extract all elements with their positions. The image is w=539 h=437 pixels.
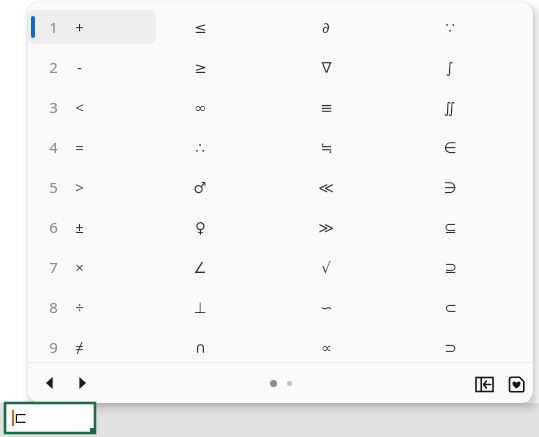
button[interactable]: ≪ [311,175,341,199]
button[interactable]: 5 [42,175,64,199]
staticText: ≡ [320,99,333,116]
button[interactable]: 8 [42,295,64,319]
staticText: 4 [49,137,58,157]
button[interactable]: ∩ [185,335,215,359]
staticText: ⊂ [444,299,457,316]
staticText: 3 [49,97,58,117]
staticText: < [75,97,84,117]
button[interactable]: ∝ [311,335,341,359]
staticText: ∫ [446,59,454,76]
button[interactable]: ≥ [185,55,215,79]
staticText: ∈ [443,139,457,156]
button[interactable]: > [64,175,94,199]
button[interactable]: ≫ [311,215,341,239]
button[interactable]: < [64,95,94,119]
staticText: ∋ [443,179,457,196]
button[interactable]: ÷ [64,295,94,319]
button[interactable]: 6 [42,215,64,239]
staticText: ≪ [318,179,334,196]
staticText: ≤ [194,19,207,36]
button[interactable]: ≒ [311,135,341,159]
button[interactable]: Dock panel [471,371,497,397]
button[interactable]: ≠ [64,335,94,359]
staticText: ∬ [444,99,456,116]
button[interactable]: 7 [42,255,64,279]
button[interactable]: ∽ [311,295,341,319]
button[interactable]: Favorites [503,371,529,397]
staticText: ∝ [321,339,332,356]
button[interactable]: 1 [42,15,64,39]
staticText: + [75,17,84,37]
staticText: ⊆ [444,219,457,236]
staticText: ⊥ [193,299,207,316]
staticText: 1 [49,17,58,37]
button[interactable]: ♀ [185,215,215,239]
button[interactable]: ∫ [435,55,465,79]
staticText: × [75,257,84,277]
button[interactable]: - [64,55,94,79]
button[interactable]: ⊆ [435,215,465,239]
button[interactable]: = [64,135,94,159]
button[interactable]: ∈ [435,135,465,159]
staticText: 7 [49,257,58,277]
staticText: ♂ [193,179,207,196]
staticText: > [75,177,84,197]
button[interactable]: ⊏ [5,403,95,433]
button[interactable]: ≤ [185,15,215,39]
button[interactable]: ± [64,215,94,239]
button[interactable]: ∴ [185,135,215,159]
staticText: = [75,137,84,157]
staticText: ± [75,217,84,237]
staticText: ÷ [75,297,84,317]
button[interactable]: ⊇ [435,255,465,279]
staticText: ∽ [320,299,333,316]
staticText: 5 [49,177,58,197]
button[interactable]: Next page [68,369,96,397]
staticText: ≥ [194,59,207,76]
button[interactable]: + [64,15,94,39]
button[interactable] [28,10,156,44]
staticText: ⊃ [444,339,457,356]
staticText: ∞ [194,99,207,116]
button[interactable]: 9 [42,335,64,359]
staticText: ∇ [321,59,332,76]
button[interactable]: Previous page [36,369,64,397]
staticText: ≠ [75,337,84,357]
button[interactable]: ⊃ [435,335,465,359]
staticText: ≒ [320,139,333,156]
staticText: 6 [49,217,58,237]
button[interactable]: 2 [42,55,64,79]
staticText: ∵ [445,19,455,36]
button[interactable]: ∠ [185,255,215,279]
button[interactable]: ∵ [435,15,465,39]
button[interactable]: 3 [42,95,64,119]
button[interactable]: ∬ [435,95,465,119]
staticText: ∩ [195,339,206,356]
staticText: ♀ [195,219,206,236]
staticText: - [77,57,82,77]
button[interactable]: ⊂ [435,295,465,319]
button[interactable]: ∞ [185,95,215,119]
button[interactable]: ∇ [311,55,341,79]
button[interactable]: 4 [42,135,64,159]
button[interactable]: √ [311,255,341,279]
staticText: √ [321,259,331,276]
staticText: 9 [49,337,58,357]
button[interactable]: × [64,255,94,279]
button[interactable]: ≡ [311,95,341,119]
staticText: 2 [49,57,58,77]
staticText: ⊏ [14,408,28,427]
staticText: ∴ [195,139,205,156]
button[interactable]: ∂ [311,15,341,39]
staticText: ≫ [318,219,334,236]
button[interactable]: ⊥ [185,295,215,319]
staticText: ∂ [322,19,330,36]
button[interactable]: ∋ [435,175,465,199]
staticText: ⊇ [444,259,457,276]
button[interactable]: ♂ [185,175,215,199]
staticText: 8 [49,297,58,317]
staticText: ∠ [193,259,207,276]
